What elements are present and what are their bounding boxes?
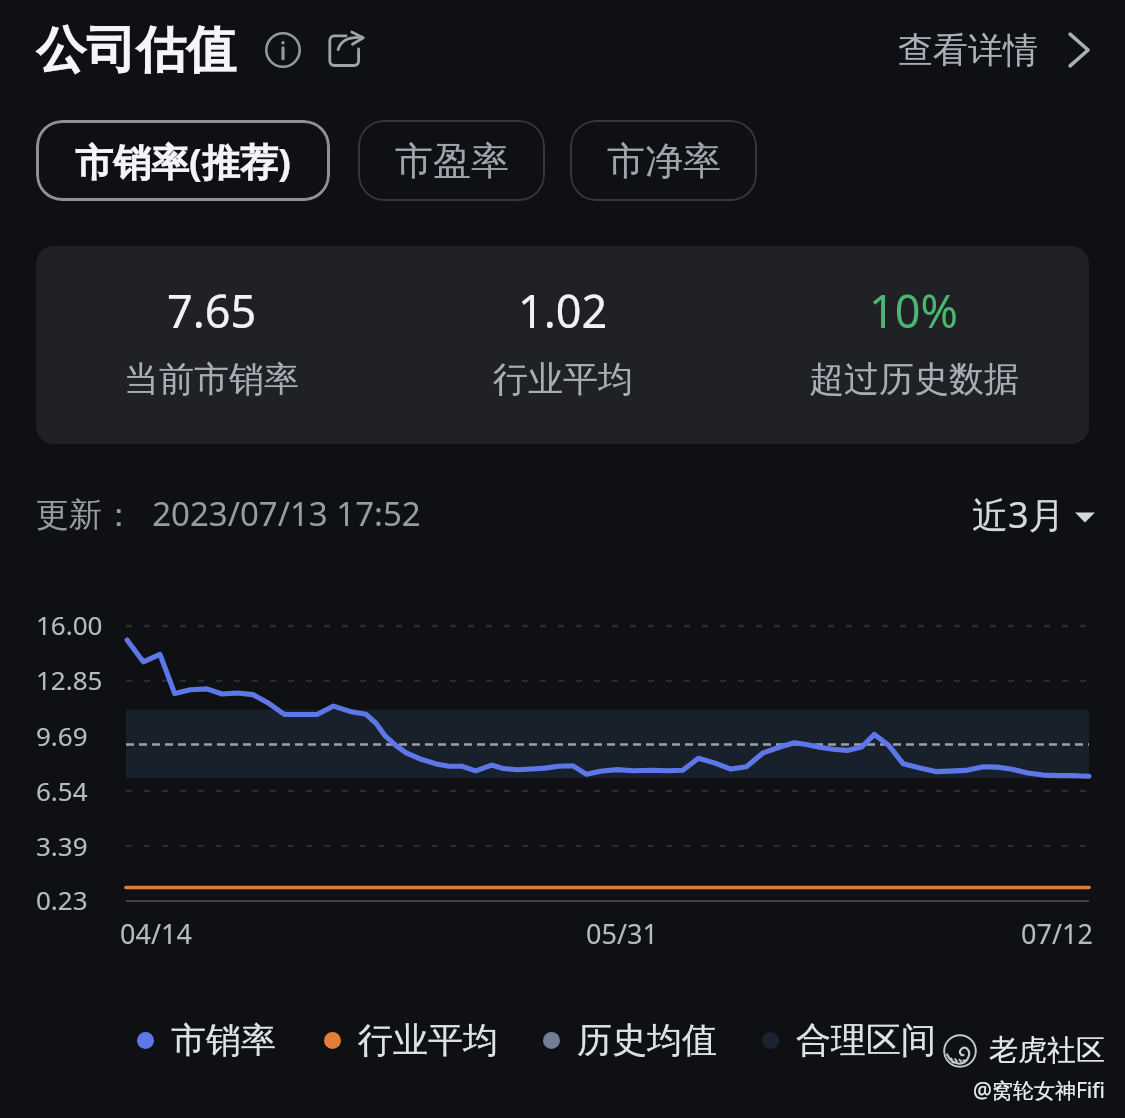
button[interactable]: 行业平均: [324, 1018, 498, 1062]
staticText: 近3月: [972, 490, 1065, 536]
staticText: 查看详情: [898, 28, 1038, 72]
staticText: 当前市销率: [124, 357, 299, 401]
button[interactable]: 合理区间: [762, 1018, 936, 1062]
staticText: 0.23: [36, 882, 88, 917]
staticText: 市销率(推荐): [75, 135, 291, 187]
staticText: 16.00: [36, 607, 103, 642]
button[interactable]: Share: [324, 28, 368, 72]
staticText: 07/12: [1021, 915, 1093, 952]
staticText: 7.65: [167, 280, 257, 341]
staticText: 1.02: [518, 280, 608, 341]
staticText: 9.69: [36, 718, 88, 753]
staticText: @窝轮女神Fifi: [973, 1076, 1105, 1105]
button[interactable]: 市销率(推荐): [36, 120, 330, 201]
staticText: 超过历史数据: [809, 357, 1019, 401]
staticText: 更新： 2023/07/13 17:52: [36, 491, 421, 536]
button[interactable]: Info: [261, 28, 305, 72]
button[interactable]: 市销率: [137, 1018, 276, 1062]
staticText: 行业平均: [358, 1018, 498, 1062]
staticText: 行业平均: [493, 357, 633, 401]
staticText: 历史均值: [577, 1018, 717, 1062]
staticText: 12.85: [36, 662, 103, 697]
staticText: 公司估值: [36, 19, 236, 82]
staticText: 市销率: [171, 1018, 276, 1062]
staticText: 合理区间: [796, 1018, 936, 1062]
staticText: 05/31: [586, 915, 658, 952]
staticText: 市净率: [607, 137, 721, 185]
staticText: 3.39: [36, 828, 88, 863]
button[interactable]: 市净率: [570, 120, 757, 201]
staticText: 04/14: [120, 915, 192, 952]
staticText: 市盈率: [395, 137, 509, 185]
button[interactable]: 查看详情: [898, 28, 1096, 72]
staticText: 6.54: [36, 773, 88, 808]
staticText: 老虎社区: [989, 1032, 1105, 1069]
button[interactable]: 市盈率: [358, 120, 545, 201]
button[interactable]: 近3月: [972, 490, 1096, 536]
staticText: 10%: [869, 280, 958, 341]
button[interactable]: 历史均值: [543, 1018, 717, 1062]
